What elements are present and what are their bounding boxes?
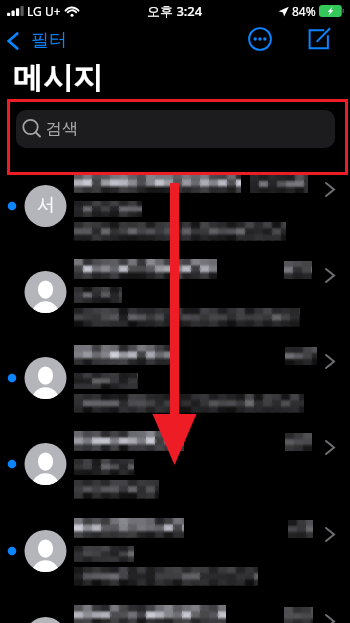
button[interactable]: 검색 [16,110,335,148]
staticText: 84% [292,3,316,19]
staticText: 메시지 [13,59,103,97]
button[interactable]: 서 [0,174,350,258]
button[interactable]: More options [243,22,277,56]
button[interactable] [0,260,350,344]
button[interactable] [0,432,350,516]
button[interactable] [0,519,350,603]
button[interactable] [0,346,350,430]
button[interactable] [0,606,350,623]
staticText: 검색 [46,119,78,139]
staticText: LG U+ [27,3,61,19]
staticText: 오후 3:24 [147,2,203,20]
staticText: 서 [37,194,55,217]
button[interactable]: Compose message [302,22,336,56]
staticText: 필터 [31,29,67,52]
button[interactable]: 필터 [0,25,79,56]
